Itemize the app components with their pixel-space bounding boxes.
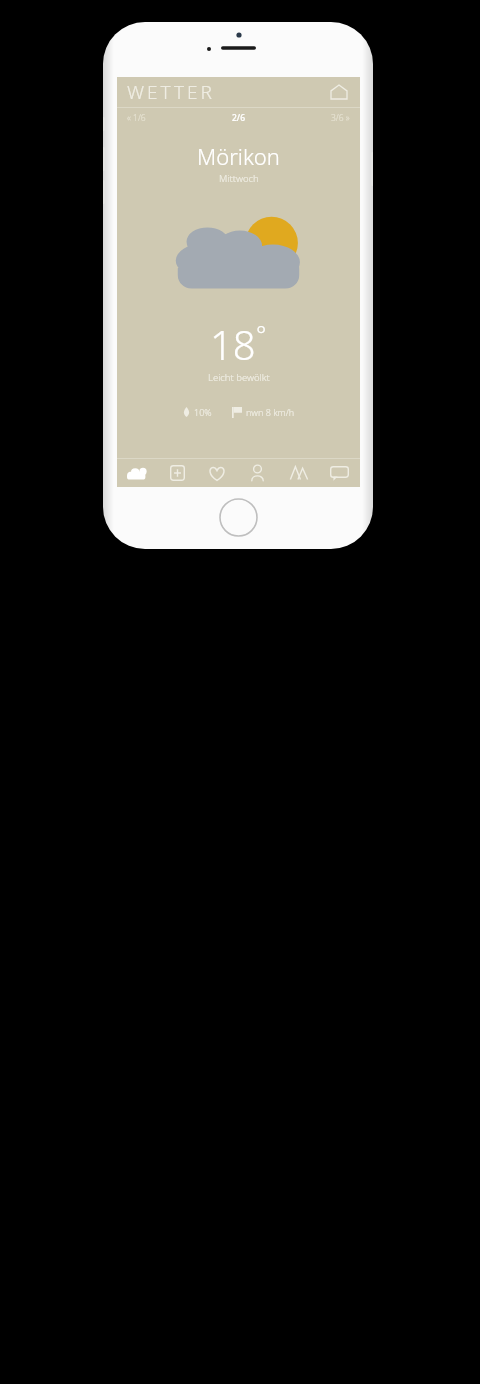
button[interactable]: Profile <box>237 459 278 487</box>
button[interactable]: « 1/6 <box>127 112 146 124</box>
button[interactable]: Favorites <box>197 459 237 487</box>
staticText: Leicht bewölkt <box>208 371 270 384</box>
button[interactable]: Home <box>328 81 350 103</box>
button[interactable]: Weather <box>117 459 157 487</box>
staticText: ° <box>256 317 267 350</box>
button[interactable]: Mountains <box>278 459 319 487</box>
button[interactable]: Messages <box>319 459 360 487</box>
staticText: 10% <box>194 406 212 418</box>
button[interactable]: Home button <box>219 498 258 537</box>
button[interactable]: 2/6 <box>146 112 331 124</box>
staticText: nwn 8 km/h <box>246 406 295 418</box>
button[interactable]: WETTER <box>127 79 215 105</box>
button[interactable]: 3/6 » <box>331 112 350 124</box>
button[interactable]: Add <box>157 459 197 487</box>
staticText: Mittwoch <box>219 172 259 185</box>
staticText: Mörikon <box>197 141 280 171</box>
staticText: 18 <box>210 317 256 371</box>
